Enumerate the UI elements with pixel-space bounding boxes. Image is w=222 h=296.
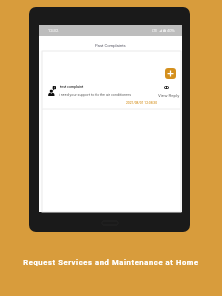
staticText: 2021/08/01 12:08:30 — [126, 101, 158, 105]
button[interactable]: Add complaint — [165, 68, 176, 79]
staticText: i need your support to fix the air condi… — [59, 93, 132, 97]
staticText: LTE — [152, 29, 158, 33]
staticText: 40% — [167, 28, 175, 33]
button[interactable]: test complaint — [42, 52, 180, 109]
staticText: Request Services and Maintenance at Home — [0, 258, 222, 267]
staticText: View Reply — [158, 93, 180, 98]
staticText: 12:32 — [48, 28, 59, 33]
staticText: test complaint — [60, 85, 84, 89]
staticText: Past Complaints — [95, 43, 126, 48]
